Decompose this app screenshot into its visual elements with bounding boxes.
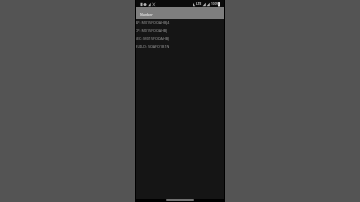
button[interactable]: Nunber [135,7,225,19]
button[interactable]: AP: M015FOOAHBJ4 [135,20,170,25]
button[interactable]: SEC: M015FOOAHBJ [135,36,170,41]
staticText: Nunber [140,12,153,17]
other: Home gesture [166,199,194,201]
staticText: 100% [211,2,220,6]
button[interactable]: CP: M015FOOAHBJ [135,28,168,33]
staticText: LTE [196,2,202,6]
button[interactable]: BUILD: SOAFO1B1N [135,44,170,49]
